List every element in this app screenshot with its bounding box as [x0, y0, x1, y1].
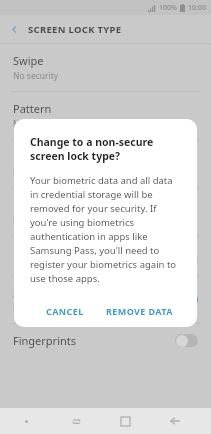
staticText: CANCEL: [46, 305, 84, 317]
staticText: PIN: [13, 149, 32, 164]
staticText: Pattern: [13, 101, 52, 116]
staticText: Face: [13, 251, 37, 266]
staticText: Change to a non-secure screen lock type?: [30, 135, 181, 163]
button[interactable]: Iris: [0, 276, 211, 323]
staticText: Your biometric data and all data in cred…: [30, 174, 181, 285]
button[interactable]: Off: [175, 334, 198, 347]
button[interactable]: Back: [150, 408, 199, 434]
button[interactable]: Pattern: [0, 92, 211, 139]
button[interactable]: Face: [0, 242, 211, 275]
button[interactable]: REMOVE DATA: [98, 299, 181, 323]
staticText: SCREEN LOCK TYPE: [28, 23, 122, 36]
staticText: Swipe: [13, 53, 44, 68]
staticText: 10:00: [188, 3, 206, 13]
button[interactable]: CANCEL: [38, 299, 92, 323]
button[interactable]: On: [175, 293, 198, 306]
button[interactable]: Off: [175, 252, 198, 265]
button[interactable]: Recent apps: [52, 408, 101, 434]
staticText: Iris: [13, 285, 30, 300]
staticText: Medium to high security: [13, 166, 111, 178]
button[interactable]: Navigate up: [0, 15, 28, 43]
button[interactable]: Home: [101, 408, 150, 434]
staticText: Password: [13, 197, 63, 212]
staticText: Fingerprints: [13, 333, 77, 348]
staticText: 100%: [159, 3, 177, 13]
staticText: REMOVE DATA: [106, 305, 173, 317]
staticText: No security: [13, 70, 59, 82]
button[interactable]: Fingerprints: [0, 324, 211, 357]
button[interactable]: Swipe: [0, 44, 211, 91]
staticText: High security: [13, 214, 66, 226]
button[interactable]: PIN: [0, 140, 211, 187]
staticText: Registered: [13, 302, 56, 314]
staticText: Medium security. Current lock type: [13, 118, 153, 130]
button[interactable]: Password: [0, 188, 211, 235]
